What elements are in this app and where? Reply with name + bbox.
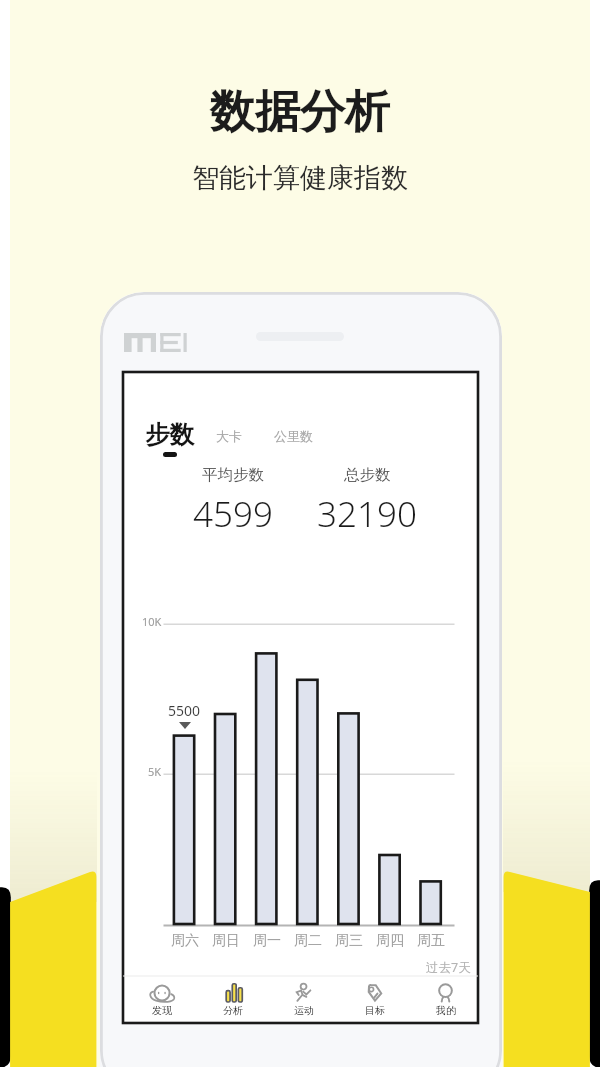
button[interactable]: 大卡 [216, 428, 242, 444]
button[interactable]: 公里数 [274, 428, 313, 444]
staticText: 周六 [171, 932, 199, 950]
staticText: 4599 [193, 490, 273, 538]
staticText: 5K [148, 764, 162, 779]
staticText: 过去7天 [426, 959, 471, 976]
staticText: 大卡 [216, 428, 242, 444]
button[interactable]: 分析 [197, 977, 268, 1023]
staticText: 32190 [317, 490, 417, 538]
staticText: 周日 [212, 932, 240, 950]
staticText: 目标 [365, 1004, 385, 1017]
staticText: 10K [142, 614, 162, 629]
staticText: 步数 [145, 419, 194, 450]
button[interactable]: 运动 [268, 977, 339, 1023]
staticText: 平均步数 [202, 465, 264, 485]
button[interactable]: 我的 [410, 977, 481, 1023]
button[interactable]: 发现 [126, 977, 197, 1023]
staticText: 我的 [436, 1004, 456, 1017]
staticText: 周二 [294, 932, 322, 950]
staticText: 发现 [152, 1004, 172, 1017]
staticText: 运动 [294, 1004, 314, 1017]
button[interactable]: 步数 [145, 419, 194, 457]
staticText: 智能计算健康指数 [192, 161, 408, 195]
staticText: 周五 [417, 932, 445, 950]
staticText: 周四 [376, 932, 404, 950]
staticText: 数据分析 [210, 84, 390, 141]
staticText: 分析 [223, 1004, 243, 1017]
staticText: 周三 [335, 932, 363, 950]
staticText: 周一 [253, 932, 281, 950]
staticText: 公里数 [274, 428, 313, 444]
button[interactable]: 目标 [339, 977, 410, 1023]
staticText: 5500 [168, 701, 201, 720]
staticText: 总步数 [344, 465, 391, 485]
